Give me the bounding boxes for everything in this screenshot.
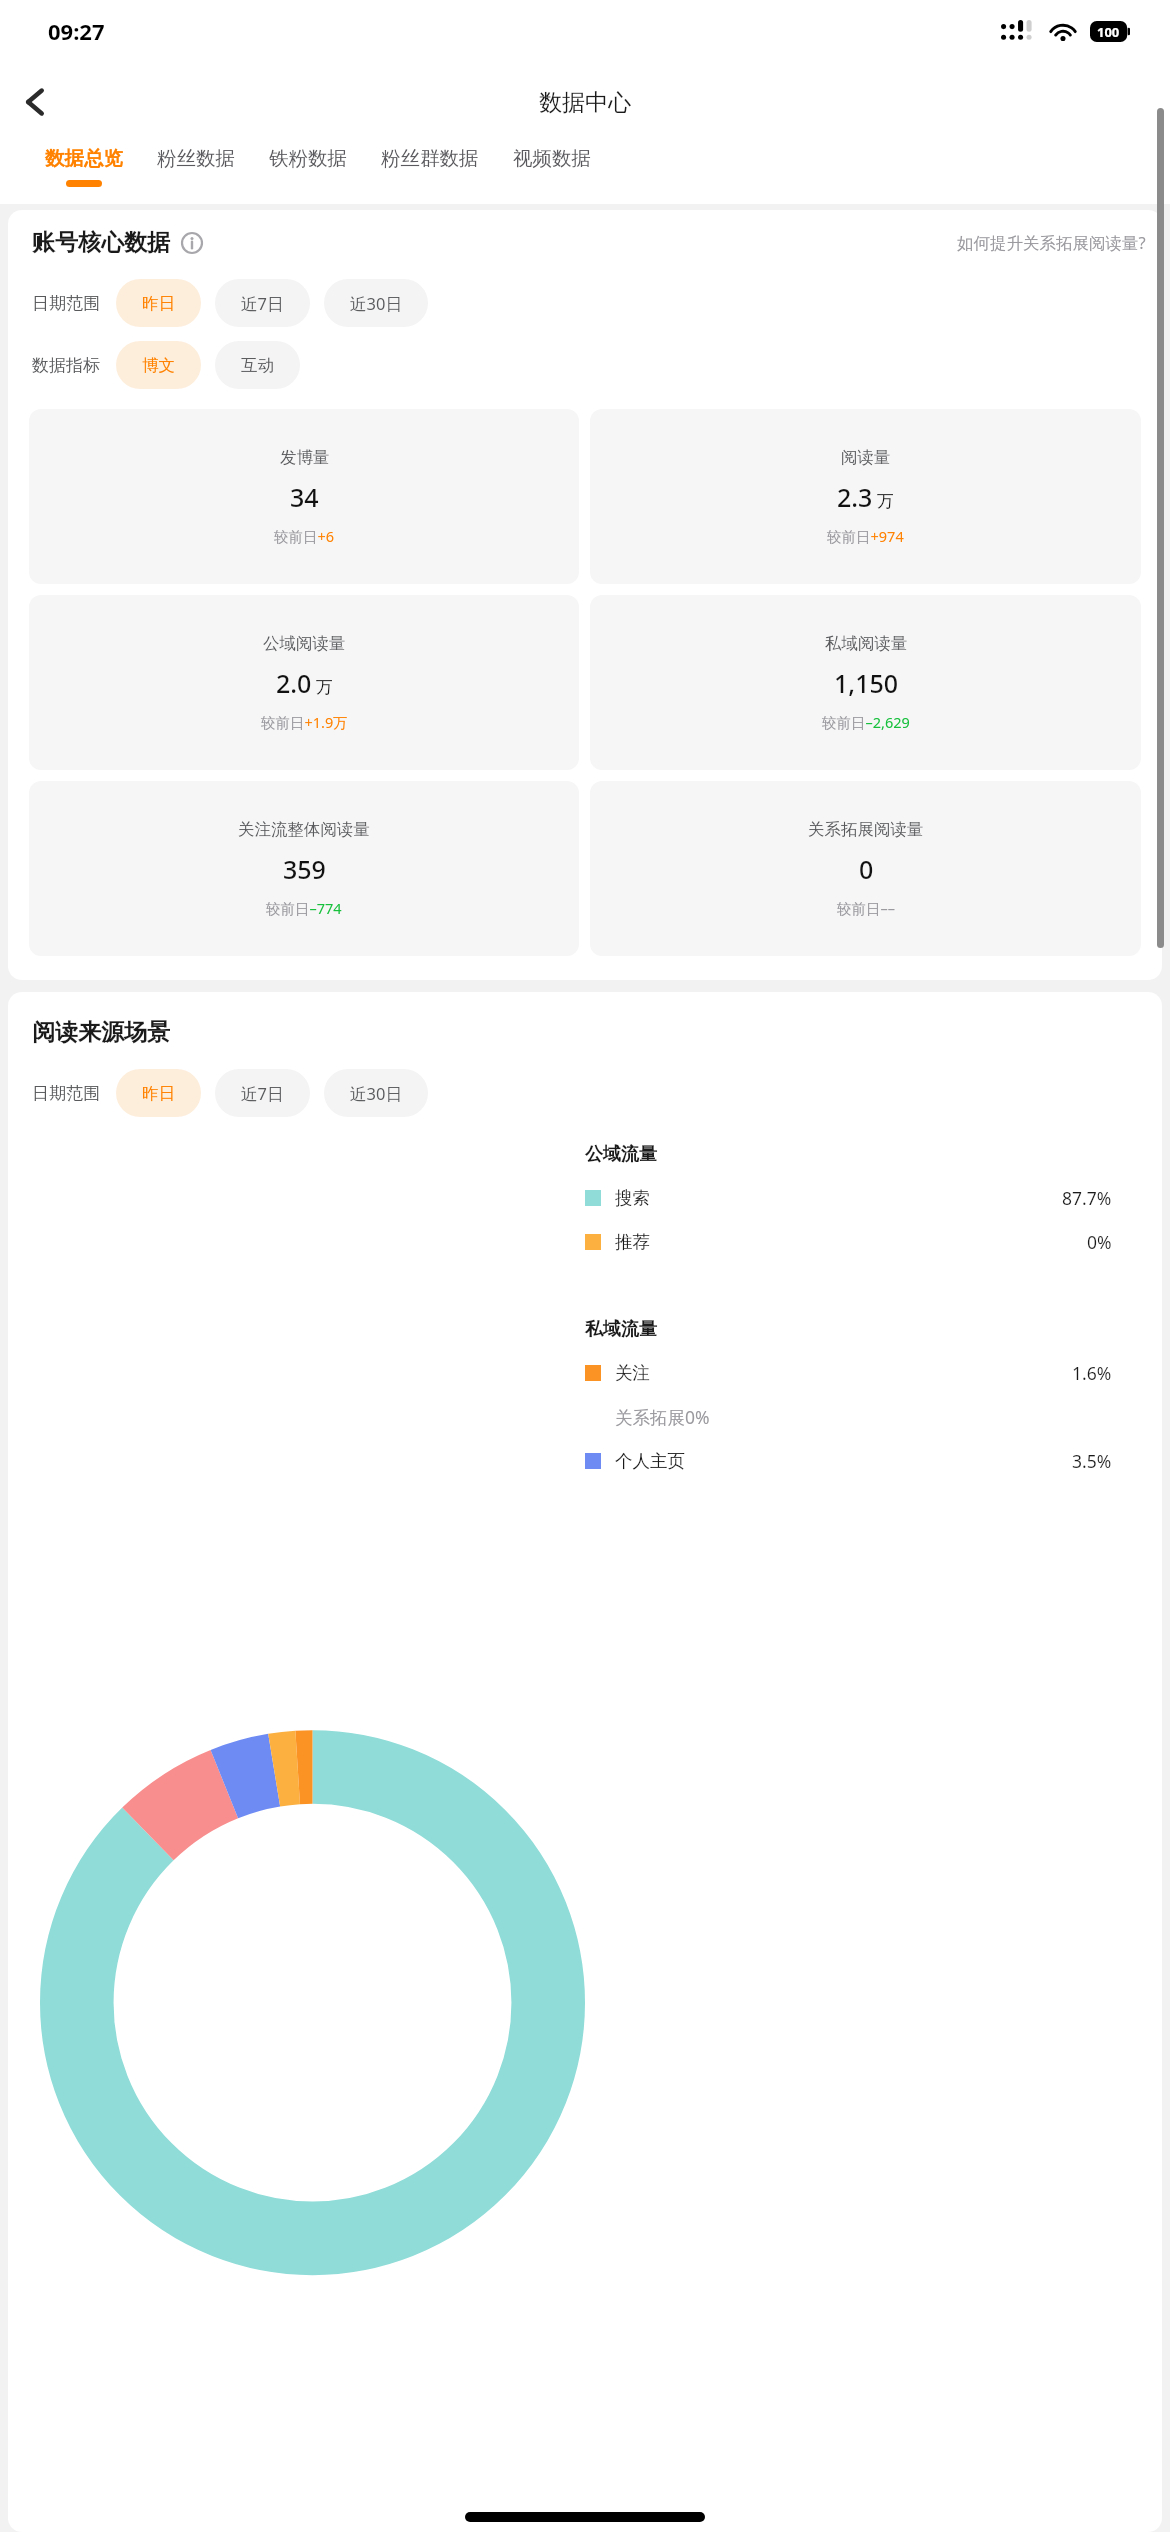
staticText: 粉丝数据 [157, 146, 235, 171]
staticText: 铁粉数据 [269, 146, 347, 171]
staticText: 推荐 [615, 1231, 650, 1253]
button[interactable]: 推荐 [585, 1220, 1138, 1264]
button[interactable]: 关注流整体阅读量 [29, 781, 579, 956]
staticText: 公域流量 [585, 1143, 657, 1166]
button[interactable]: 粉丝群数据 [364, 142, 496, 204]
staticText: 较前日–– [837, 898, 895, 918]
staticText: 0 [859, 852, 874, 886]
button[interactable]: 博文 [116, 341, 201, 389]
button[interactable]: 近30日 [324, 279, 428, 327]
staticText: 粉丝群数据 [381, 146, 479, 171]
staticText: 公域阅读量 [263, 633, 346, 654]
staticText: 视频数据 [513, 146, 591, 171]
button[interactable]: 关系拓展阅读量 [590, 781, 1141, 956]
button[interactable]: 阅读量 [590, 409, 1141, 584]
staticText: 关系拓展阅读量 [808, 819, 924, 840]
staticText: 昨日 [142, 293, 175, 314]
staticText: 2.3 [837, 480, 873, 514]
staticText: 万 [316, 677, 333, 698]
staticText: 1,150 [834, 666, 899, 700]
staticText: 近30日 [350, 1082, 402, 1105]
staticText: 博文 [142, 355, 175, 376]
staticText: 私域流量 [585, 1318, 657, 1341]
staticText: 阅读量 [841, 447, 891, 468]
button[interactable]: 私域阅读量 [590, 595, 1141, 770]
staticText: 较前日+6 [274, 526, 335, 546]
staticText: 发博量 [280, 447, 330, 468]
staticText: 近7日 [241, 292, 284, 315]
button[interactable]: 粉丝数据 [140, 142, 252, 204]
staticText: 私域阅读量 [825, 633, 908, 654]
staticText: 日期范围 [32, 1083, 100, 1104]
button[interactable]: 关系拓展0% [585, 1395, 1138, 1439]
staticText: 100 [1097, 23, 1120, 41]
staticText: 万 [877, 491, 894, 512]
staticText: 3.5% [1072, 1449, 1112, 1473]
staticText: 近30日 [350, 292, 402, 315]
button[interactable]: 昨日 [116, 279, 201, 327]
staticText: 个人主页 [615, 1450, 685, 1472]
staticText: 互动 [241, 355, 274, 376]
staticText: 昨日 [142, 1083, 175, 1104]
staticText: 2.0 [276, 666, 312, 700]
staticText: 数据中心 [539, 88, 631, 117]
button[interactable]: 公域阅读量 [29, 595, 579, 770]
staticText: 34 [290, 480, 319, 514]
staticText: 数据总览 [45, 146, 123, 171]
staticText: 09:27 [48, 16, 105, 46]
staticText: 1.6% [1072, 1361, 1112, 1385]
staticText: 如何提升关系拓展阅读量? [957, 231, 1146, 254]
button[interactable]: Back [0, 66, 72, 138]
button[interactable]: 近7日 [215, 279, 310, 327]
button[interactable]: 铁粉数据 [252, 142, 364, 204]
staticText: 较前日–774 [266, 898, 342, 918]
button[interactable]: 近30日 [324, 1069, 428, 1117]
staticText: 较前日+974 [827, 526, 904, 546]
button[interactable]: 如何提升关系拓展阅读量? [957, 231, 1146, 254]
button[interactable]: 视频数据 [496, 142, 608, 204]
staticText: 关注 [615, 1362, 650, 1384]
staticText: 较前日–2,629 [822, 712, 910, 732]
button[interactable]: 发博量 [29, 409, 579, 584]
staticText: 账号核心数据 [32, 228, 170, 257]
button[interactable]: 近7日 [215, 1069, 310, 1117]
staticText: 搜索 [615, 1187, 650, 1209]
staticText: 87.7% [1062, 1186, 1112, 1210]
button[interactable]: Info [180, 231, 204, 255]
button[interactable]: 昨日 [116, 1069, 201, 1117]
staticText: 近7日 [241, 1082, 284, 1105]
staticText: 较前日+1.9万 [261, 712, 348, 732]
button[interactable]: 数据总览 [28, 142, 140, 204]
button[interactable]: 搜索 [585, 1176, 1138, 1220]
staticText: 0% [1087, 1230, 1112, 1254]
button[interactable]: 个人主页 [585, 1439, 1138, 1483]
staticText: 359 [283, 852, 326, 886]
staticText: 日期范围 [32, 293, 100, 314]
staticText: 阅读来源场景 [32, 1018, 170, 1047]
button[interactable]: 关注 [585, 1351, 1138, 1395]
staticText: 关注流整体阅读量 [238, 819, 370, 840]
button[interactable]: 互动 [215, 341, 300, 389]
staticText: 数据指标 [32, 355, 100, 376]
staticText: 关系拓展0% [615, 1405, 710, 1429]
